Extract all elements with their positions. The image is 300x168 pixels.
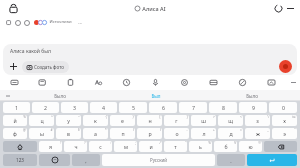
staticText: Создать фото — [34, 64, 64, 70]
button[interactable]: и — [139, 141, 162, 152]
button[interactable]: 8 — [209, 102, 237, 113]
button[interactable]: л — [191, 128, 216, 139]
button[interactable]: в — [56, 128, 81, 139]
button[interactable]: Toolbar item 6 — [141, 75, 170, 90]
button[interactable]: , — [72, 154, 100, 166]
button[interactable]: More — [75, 18, 84, 27]
button[interactable]: Send — [247, 154, 297, 166]
button[interactable]: Toolbar item 7 — [170, 75, 199, 90]
staticText: - — [186, 128, 188, 132]
button[interactable]: д — [218, 128, 243, 139]
staticText: ··· — [78, 20, 82, 26]
button[interactable]: Emoji — [39, 154, 70, 166]
button[interactable]: 5 — [119, 102, 147, 113]
button[interactable]: ж — [245, 128, 270, 139]
button[interactable]: Expand suggestions — [4, 92, 11, 99]
staticText: о — [175, 130, 179, 137]
button[interactable]: с — [89, 141, 112, 152]
staticText: л — [202, 130, 206, 137]
button[interactable]: 123 — [3, 154, 37, 166]
button[interactable]: ю — [239, 141, 262, 152]
staticText: : — [110, 141, 111, 145]
staticText: а — [94, 130, 97, 137]
button[interactable]: Алиса AI — [135, 5, 166, 12]
button[interactable]: Создать фото — [22, 61, 69, 73]
button[interactable]: Like — [13, 18, 22, 27]
button[interactable]: о — [164, 128, 189, 139]
button[interactable]: Toolbar item 5 — [112, 75, 141, 90]
staticText: 5 — [132, 104, 135, 111]
button[interactable]: Toolbar item 8 — [199, 75, 228, 90]
button[interactable]: Shift — [3, 141, 37, 152]
button[interactable]: х — [272, 115, 297, 126]
button[interactable]: м — [114, 141, 137, 152]
button[interactable]: Был — [108, 90, 204, 101]
staticText: # — [50, 128, 53, 132]
button[interactable]: 2 — [32, 102, 59, 113]
button[interactable]: ш — [191, 115, 216, 126]
button[interactable]: Toolbar item 1 — [0, 75, 28, 90]
button[interactable]: Backspace — [264, 141, 297, 152]
staticText: 1 — [15, 104, 18, 111]
button[interactable]: Было — [204, 90, 300, 101]
button[interactable]: а — [83, 128, 108, 139]
button[interactable]: 9 — [239, 102, 267, 113]
button[interactable]: Toolbar item 9 — [228, 75, 257, 90]
button[interactable]: More tools — [286, 75, 300, 90]
button[interactable]: Источники — [34, 19, 72, 25]
button[interactable]: к — [83, 115, 108, 126]
button[interactable]: ц — [29, 115, 54, 126]
button[interactable]: ч — [64, 141, 87, 152]
button[interactable]: щ — [218, 115, 243, 126]
button[interactable]: More options — [284, 2, 296, 14]
button[interactable]: Было — [12, 90, 108, 101]
button[interactable]: 3 — [61, 102, 88, 113]
staticText: ! — [60, 141, 61, 145]
staticText: ' — [185, 141, 186, 145]
staticText: ш — [201, 117, 206, 124]
staticText: № — [292, 115, 296, 119]
button[interactable]: б — [214, 141, 237, 152]
button[interactable]: Алиса какой был — [3, 44, 297, 58]
button[interactable]: я — [39, 141, 62, 152]
button[interactable]: Back — [6, 1, 20, 15]
button[interactable]: е — [110, 115, 135, 126]
button[interactable]: у — [56, 115, 81, 126]
button[interactable]: Copy — [4, 18, 13, 27]
button[interactable]: Toolbar item 10 — [257, 75, 286, 90]
staticText: 6 — [162, 104, 165, 111]
button[interactable]: р — [137, 128, 162, 139]
button[interactable]: т — [164, 141, 187, 152]
button[interactable]: э — [272, 128, 297, 139]
button[interactable]: п — [110, 128, 135, 139]
button[interactable]: й — [3, 115, 27, 126]
button[interactable]: Toolbar item 3 — [56, 75, 84, 90]
button[interactable]: н — [137, 115, 162, 126]
staticText: ч — [74, 143, 78, 150]
staticText: ? — [84, 141, 86, 145]
staticText: / — [159, 141, 161, 145]
button[interactable]: 1 — [3, 102, 30, 113]
button[interactable]: Toolbar item 2 — [28, 75, 56, 90]
button[interactable]: г — [164, 115, 189, 126]
button[interactable]: 7 — [179, 102, 207, 113]
staticText: ь — [199, 143, 202, 150]
staticText: ц — [40, 117, 44, 124]
button[interactable]: Dislike — [22, 18, 31, 27]
button[interactable]: ф — [3, 128, 27, 139]
button[interactable]: Add attachment — [8, 61, 19, 72]
button[interactable]: ы — [29, 128, 54, 139]
button[interactable]: Record voice — [279, 60, 292, 73]
button[interactable]: 6 — [149, 102, 177, 113]
staticText: . — [230, 157, 232, 164]
button[interactable]: Refresh — [272, 2, 284, 14]
button[interactable]: 0 — [269, 102, 297, 113]
staticText: 9 — [252, 104, 255, 111]
button[interactable]: ь — [189, 141, 212, 152]
button[interactable]: Toolbar item 4 — [84, 75, 112, 90]
button[interactable]: 4 — [90, 102, 117, 113]
staticText: _ — [267, 128, 269, 132]
button[interactable]: Русский — [102, 154, 215, 166]
button[interactable]: з — [245, 115, 270, 126]
